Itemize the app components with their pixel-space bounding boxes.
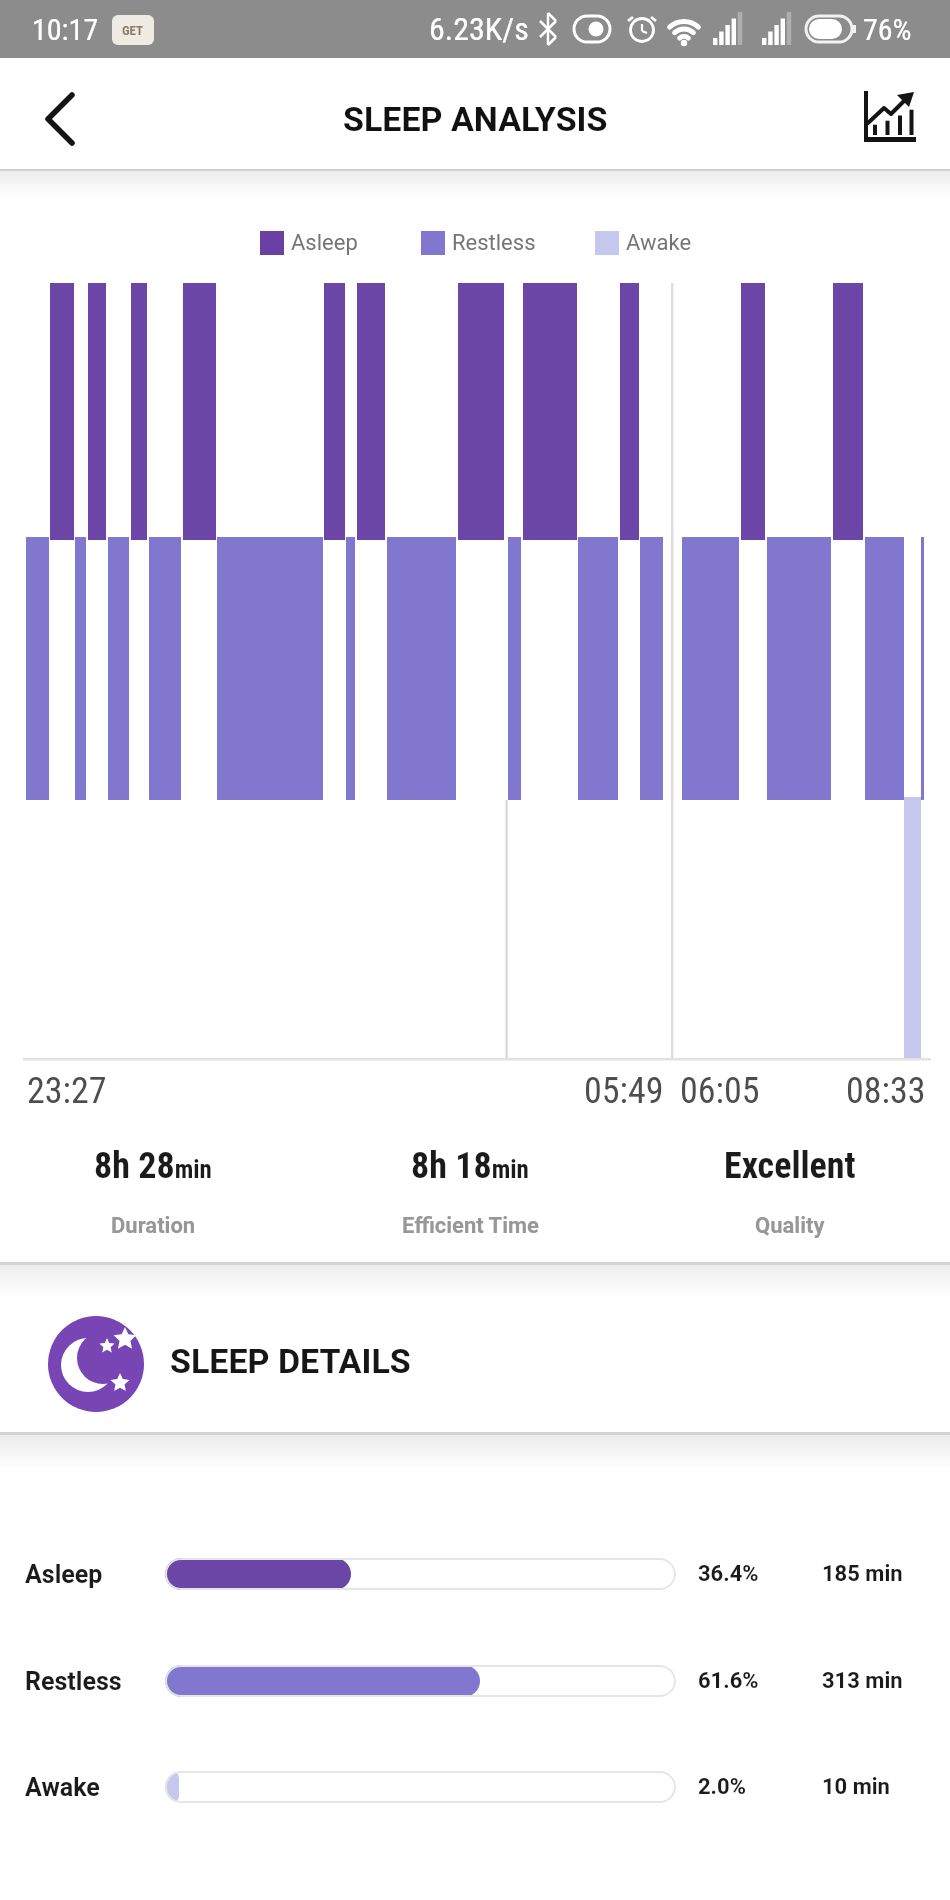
staticText: 2.0% bbox=[698, 1774, 746, 1800]
staticText: Excellent bbox=[724, 1145, 856, 1187]
staticText: 05:49 bbox=[584, 1070, 664, 1112]
button[interactable]: Awake bbox=[0, 1757, 950, 1817]
staticText: 36.4% bbox=[698, 1561, 759, 1587]
staticText: Restless bbox=[25, 1667, 122, 1696]
staticText: 8h 28min bbox=[94, 1145, 212, 1187]
staticText: Quality bbox=[755, 1213, 825, 1239]
staticText: 06:05 bbox=[680, 1070, 760, 1112]
button[interactable]: Asleep bbox=[0, 1544, 950, 1604]
staticText: Duration bbox=[111, 1213, 196, 1239]
staticText: 8h 18min bbox=[411, 1145, 529, 1187]
staticText: Awake bbox=[626, 230, 692, 256]
staticText: 10:17 bbox=[32, 12, 99, 47]
staticText: 23:27 bbox=[27, 1070, 107, 1112]
staticText: 61.6% bbox=[698, 1668, 759, 1694]
staticText: Efficient Time bbox=[402, 1213, 539, 1239]
staticText: SLEEP DETAILS bbox=[170, 1341, 411, 1381]
staticText: 10 min bbox=[822, 1774, 890, 1800]
staticText: 6.23K/s bbox=[429, 10, 529, 48]
staticText: 08:33 bbox=[846, 1070, 926, 1112]
button[interactable] bbox=[845, 80, 935, 160]
staticText: 185 min bbox=[822, 1561, 903, 1587]
staticText: SLEEP ANALYSIS bbox=[343, 99, 608, 139]
button[interactable] bbox=[16, 77, 100, 161]
button[interactable]: Restless bbox=[0, 1651, 950, 1711]
button[interactable]: SLEEP DETAILS bbox=[0, 1297, 950, 1432]
staticText: Asleep bbox=[25, 1560, 103, 1589]
staticText: Asleep bbox=[291, 230, 358, 256]
staticText: Restless bbox=[452, 230, 536, 256]
staticText: 76% bbox=[863, 12, 912, 47]
staticText: Awake bbox=[25, 1773, 100, 1802]
staticText: GET bbox=[122, 23, 144, 38]
staticText: 313 min bbox=[822, 1668, 903, 1694]
